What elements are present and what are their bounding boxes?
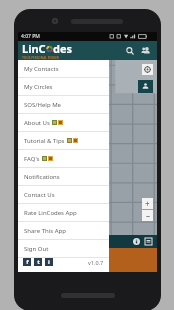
staticText: Contact Us [24, 191, 55, 199]
button[interactable]: Zoom out [142, 210, 153, 221]
button[interactable]: Instagram [45, 258, 53, 266]
button[interactable]: Share This App [18, 222, 109, 239]
button[interactable]: My location [142, 64, 153, 75]
staticText: YOUR PERSONAL FINDER [22, 56, 59, 60]
button[interactable]: About Us [18, 114, 109, 131]
staticText: Tutorial & Tips [24, 137, 65, 145]
button[interactable]: SOS/Help Me [18, 96, 109, 113]
staticText: About Us [24, 119, 50, 127]
button[interactable]: Map marker [138, 80, 153, 93]
button[interactable]: My Contacts [18, 60, 109, 77]
staticText: – [146, 210, 150, 221]
staticText: + [145, 198, 150, 209]
button[interactable]: Contacts [139, 44, 152, 57]
staticText: My Contacts [24, 65, 59, 73]
staticText: Sign Out [24, 245, 49, 253]
button[interactable]: Twitter [34, 258, 42, 266]
button[interactable]: Sign Out [18, 240, 109, 257]
button[interactable]: Search [123, 44, 136, 57]
button[interactable]: FAQ's [18, 150, 109, 167]
staticText: des [53, 41, 73, 56]
button[interactable]: Zoom in [142, 198, 153, 209]
staticText: i [48, 258, 50, 266]
button[interactable]: Notifications [18, 168, 109, 185]
staticText: 4:07 PM [21, 33, 40, 40]
staticText: My Circles [24, 83, 53, 91]
staticText: Admin [22, 263, 38, 270]
staticText: t [37, 258, 40, 266]
staticText: f [26, 258, 29, 266]
staticText: Location [22, 251, 43, 258]
staticText: Notifications [24, 173, 60, 181]
button[interactable]: Facebook [23, 258, 31, 266]
staticText: SOS/Help Me [24, 101, 61, 109]
button[interactable]: Contact Us [18, 186, 109, 203]
staticText: 394 [22, 238, 33, 246]
button[interactable]: Tutorial & Tips [18, 132, 109, 149]
staticText: v1.0.7 [88, 259, 104, 266]
button[interactable]: My Circles [18, 78, 109, 95]
staticText: FAQ's [24, 155, 40, 163]
button[interactable]: Rate LinCodes App [18, 204, 109, 221]
staticText: LinC [22, 41, 46, 56]
button[interactable]: Info [132, 237, 141, 246]
staticText: Hoagland Ave [20, 228, 43, 233]
button[interactable]: List view [144, 237, 153, 246]
staticText: Share This App [24, 227, 66, 235]
staticText: Rate LinCodes App [24, 209, 77, 217]
